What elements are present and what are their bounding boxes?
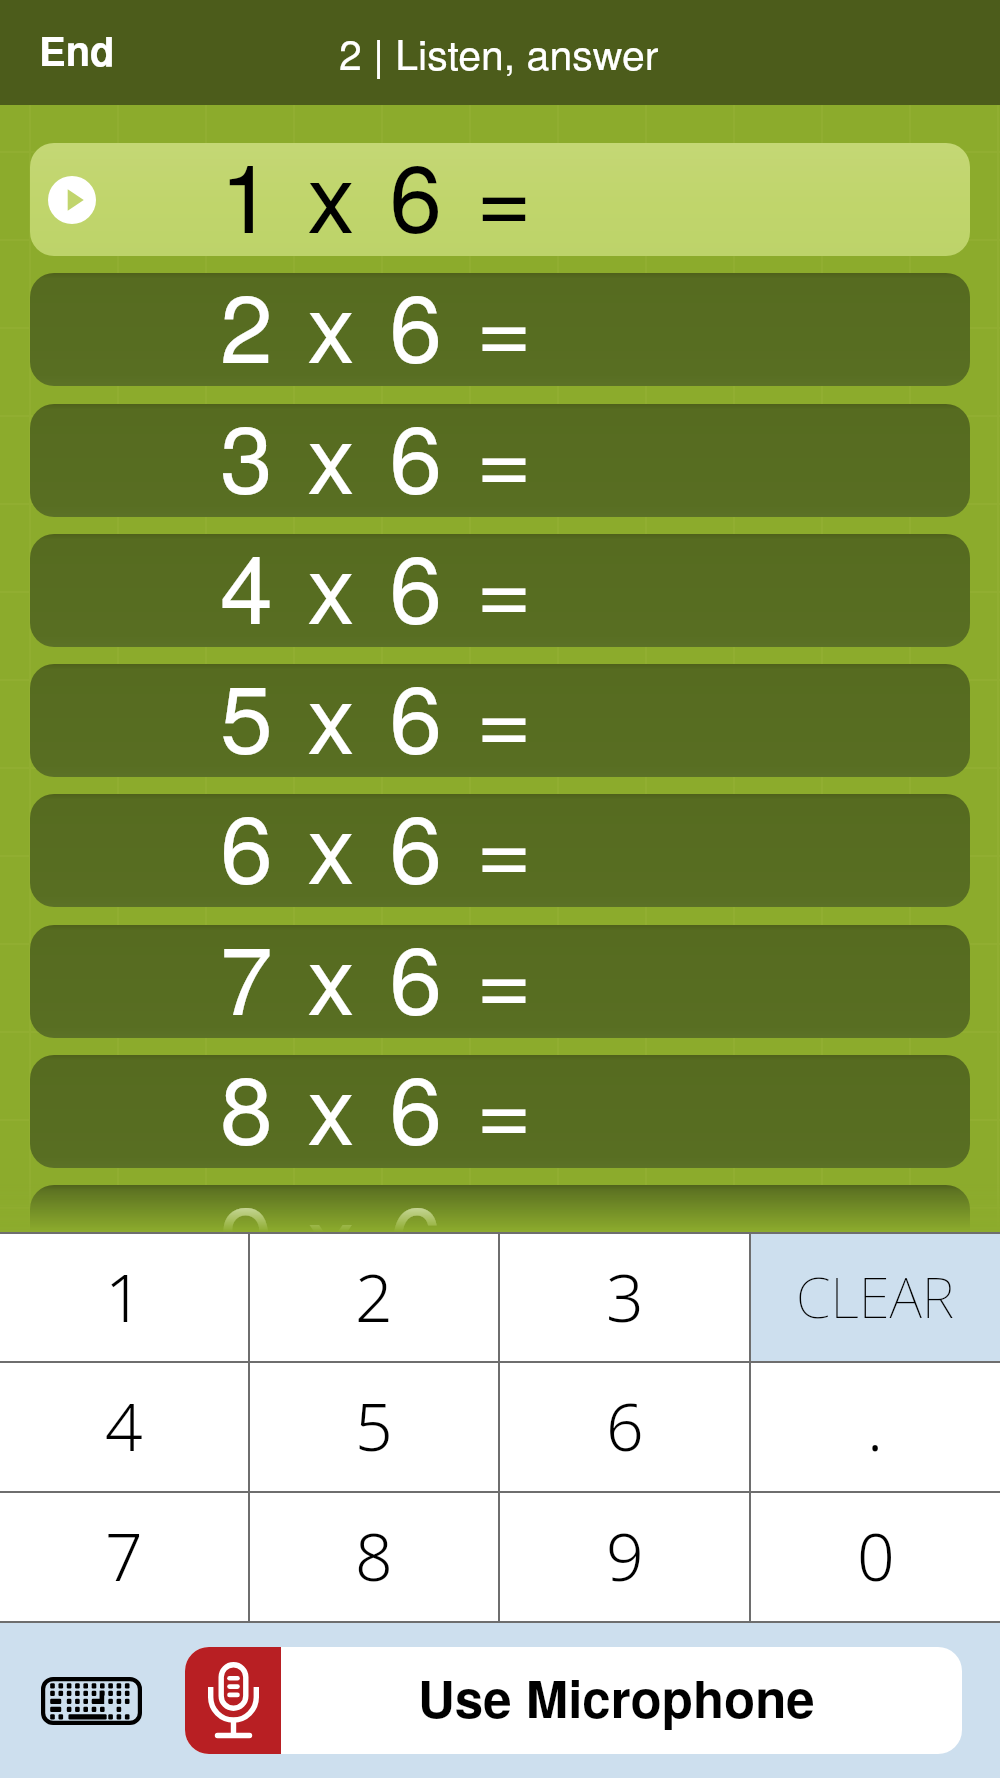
button[interactable]: 5 [250, 1363, 498, 1491]
button[interactable]: 0 [751, 1493, 1000, 1621]
staticText: 2 x 6 = [220, 273, 536, 367]
button[interactable]: 9 [500, 1493, 749, 1621]
button[interactable]: 9 x 6 = [30, 1185, 970, 1298]
staticText: 3 x 6 = [220, 404, 536, 498]
button[interactable]: 2 [250, 1234, 498, 1361]
staticText: 9 [606, 1510, 644, 1600]
button[interactable]: 6 x 6 = [30, 794, 970, 907]
staticText: Use Microphone [418, 1661, 815, 1734]
button[interactable]: 6 [500, 1363, 749, 1491]
button[interactable]: End [17, 12, 137, 93]
button[interactable]: 8 [250, 1493, 498, 1621]
staticText: . [867, 1380, 884, 1470]
staticText: 6 [606, 1380, 644, 1470]
other: Play [48, 176, 96, 224]
staticText: 4 x 6 = [220, 534, 536, 628]
staticText: 9 x 6 = [220, 1185, 536, 1279]
staticText: 0 [857, 1510, 895, 1600]
staticText: 1 x 6 = [220, 143, 536, 237]
button[interactable]: 8 x 6 = [30, 1055, 970, 1168]
staticText: 1 [105, 1251, 143, 1341]
button[interactable]: Keyboard [29, 1651, 153, 1751]
button[interactable]: . [751, 1363, 1000, 1491]
button[interactable]: Play [30, 143, 970, 256]
button[interactable]: Use Microphone [185, 1647, 962, 1754]
staticText: 6 x 6 = [220, 794, 536, 888]
button[interactable]: 4 x 6 = [30, 534, 970, 647]
staticText: 4 [105, 1380, 143, 1470]
button[interactable]: 1 [0, 1234, 248, 1361]
button[interactable]: CLEAR [751, 1234, 1000, 1361]
staticText: CLEAR [796, 1258, 955, 1334]
staticText: 8 [355, 1510, 393, 1600]
button[interactable]: 7 [0, 1493, 248, 1621]
button[interactable]: 5 x 6 = [30, 664, 970, 777]
staticText: 2 [355, 1251, 393, 1341]
button[interactable]: 2 x 6 = [30, 273, 970, 386]
staticText: 3 [606, 1251, 644, 1341]
button[interactable]: 4 [0, 1363, 248, 1491]
staticText: End [39, 21, 115, 78]
staticText: 5 x 6 = [220, 664, 536, 758]
staticText: 7 x 6 = [220, 925, 536, 1019]
button[interactable]: 3 x 6 = [30, 404, 970, 517]
staticText: 5 [355, 1380, 393, 1470]
staticText: 2 | Listen, answer [339, 23, 659, 82]
staticText: 8 x 6 = [220, 1055, 536, 1149]
button[interactable]: 7 x 6 = [30, 925, 970, 1038]
staticText: 7 [105, 1510, 143, 1600]
button[interactable]: 3 [500, 1234, 749, 1361]
